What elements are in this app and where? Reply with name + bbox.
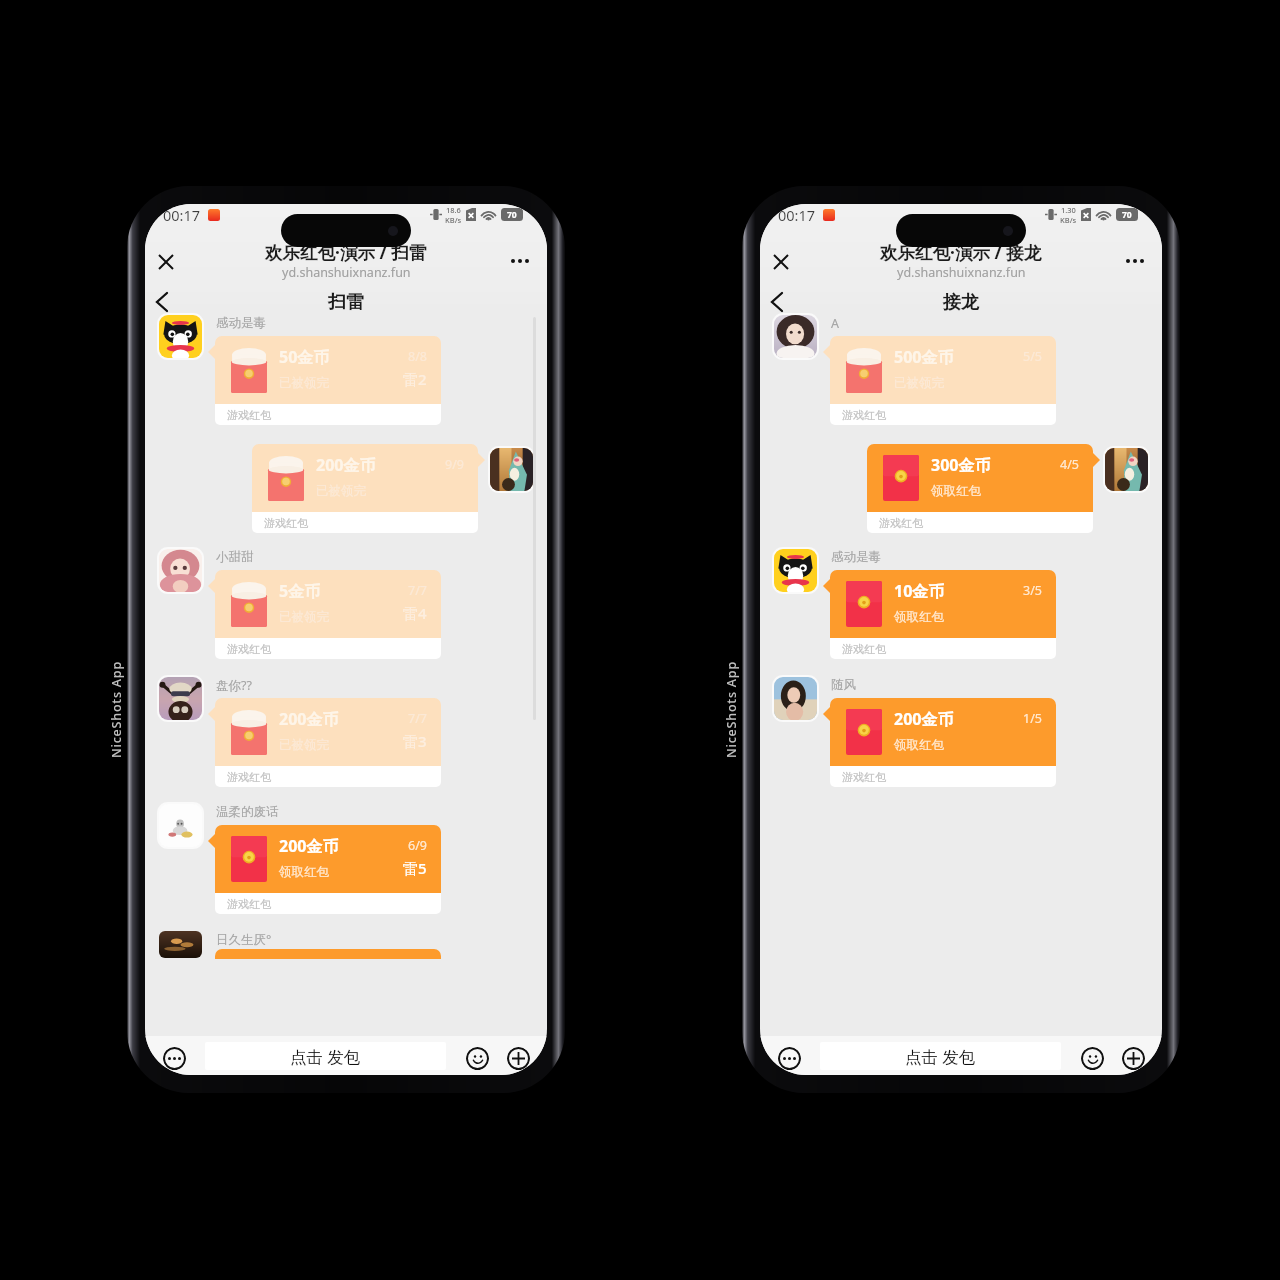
button[interactable]: 200金币 [830,698,1056,787]
button[interactable]: Add [507,1047,530,1070]
button[interactable]: Profile photo [157,547,204,594]
staticText: 7/7 [408,582,427,599]
button[interactable]: Back [760,285,794,319]
staticText: 6/9 [408,837,427,854]
staticText: 3/5 [1023,582,1042,599]
button[interactable]: Profile photo [772,313,819,360]
button[interactable]: Profile photo [157,313,204,360]
button[interactable]: Emoji [1081,1047,1104,1070]
staticText: 已被领完 [279,609,329,625]
staticText: KB/s [1060,215,1077,225]
button[interactable]: 点击 发包 [820,1042,1061,1070]
staticText: 已被领完 [279,375,329,391]
staticText: 1.30 [1061,205,1076,215]
staticText: 欢乐红包·演示 / 接龙 [880,240,1042,264]
staticText: 游戏红包 [842,642,886,656]
button[interactable]: More [163,1047,186,1070]
staticText: 领取红包 [894,737,944,753]
staticText: 70 [1122,209,1132,221]
button[interactable]: 50金币 [215,336,441,425]
staticText: 200金币 [279,835,339,857]
staticText: 欢乐红包·演示 / 扫雷 [265,240,427,264]
staticText: 200金币 [316,454,376,476]
button[interactable]: More options [498,239,542,283]
button[interactable]: 10金币 [830,570,1056,659]
staticText: NiceShots App [108,661,125,758]
staticText: 雷4 [403,603,427,623]
staticText: 游戏红包 [227,408,271,422]
button[interactable]: Profile photo [488,446,535,493]
staticText: 70 [507,209,517,221]
staticText: 8/8 [408,348,427,365]
staticText: yd.shanshuixnanz.fun [897,264,1026,281]
staticText: 4/5 [1060,456,1079,473]
button[interactable]: 200金币 [215,698,441,787]
button[interactable]: 点击 发包 [205,1042,446,1070]
staticText: 10金币 [894,580,945,602]
staticText: 温柔的废话 [216,804,279,820]
staticText: 游戏红包 [227,897,271,911]
staticText: 游戏红包 [879,516,923,530]
button[interactable]: Profile photo [772,547,819,594]
staticText: yd.shanshuixnanz.fun [282,264,411,281]
button[interactable]: 300金币 [867,444,1093,533]
staticText: 00:17 [163,205,201,225]
staticText: 小甜甜 [216,549,254,565]
staticText: KB/s [445,215,462,225]
button[interactable]: Profile photo [157,675,204,722]
staticText: 7/7 [408,710,427,727]
button[interactable]: More [778,1047,801,1070]
staticText: 游戏红包 [842,770,886,784]
staticText: 领取红包 [279,864,329,880]
button[interactable]: Profile photo [157,802,204,849]
staticText: 18.6 [446,205,461,215]
button[interactable]: Profile photo [772,675,819,722]
staticText: 随风 [831,677,856,693]
staticText: NiceShots App [723,661,740,758]
staticText: A [831,315,839,332]
button[interactable]: 200金币 [252,444,478,533]
staticText: 200金币 [279,708,339,730]
staticText: 感动是毒 [216,315,266,331]
staticText: 5/5 [1023,348,1042,365]
button[interactable]: Add [1122,1047,1145,1070]
staticText: 已被领完 [279,737,329,753]
staticText: 领取红包 [931,483,981,499]
staticText: 5金币 [279,580,321,602]
staticText: 游戏红包 [227,770,271,784]
staticText: 感动是毒 [831,549,881,565]
staticText: 00:17 [778,205,816,225]
button[interactable]: 5金币 [215,570,441,659]
staticText: 游戏红包 [264,516,308,530]
button[interactable]: Close [145,241,186,282]
staticText: 领取红包 [894,609,944,625]
staticText: 扫雷 [328,291,364,314]
staticText: 已被领完 [894,375,944,391]
staticText: 游戏红包 [842,408,886,422]
button[interactable]: More options [1113,239,1157,283]
staticText: 1/5 [1023,710,1042,727]
staticText: 日久生厌° [216,931,272,948]
staticText: 300金币 [931,454,991,476]
staticText: 雷2 [403,369,427,389]
button[interactable]: Emoji [466,1047,489,1070]
staticText: 50金币 [279,346,330,368]
button[interactable]: 200金币 [215,825,441,914]
staticText: 200金币 [894,708,954,730]
staticText: 9/9 [445,456,464,473]
staticText: 点击 发包 [905,1045,976,1068]
staticText: 雷5 [403,858,427,878]
staticText: 500金币 [894,346,954,368]
button[interactable]: Profile photo [1103,446,1150,493]
staticText: 盘你?? [216,677,252,694]
staticText: 已被领完 [316,483,366,499]
button[interactable]: Close [760,241,801,282]
staticText: 接龙 [943,291,979,314]
staticText: 游戏红包 [227,642,271,656]
button[interactable]: Back [145,285,179,319]
staticText: 雷3 [403,731,427,751]
button[interactable]: 500金币 [830,336,1056,425]
staticText: 点击 发包 [290,1045,361,1068]
